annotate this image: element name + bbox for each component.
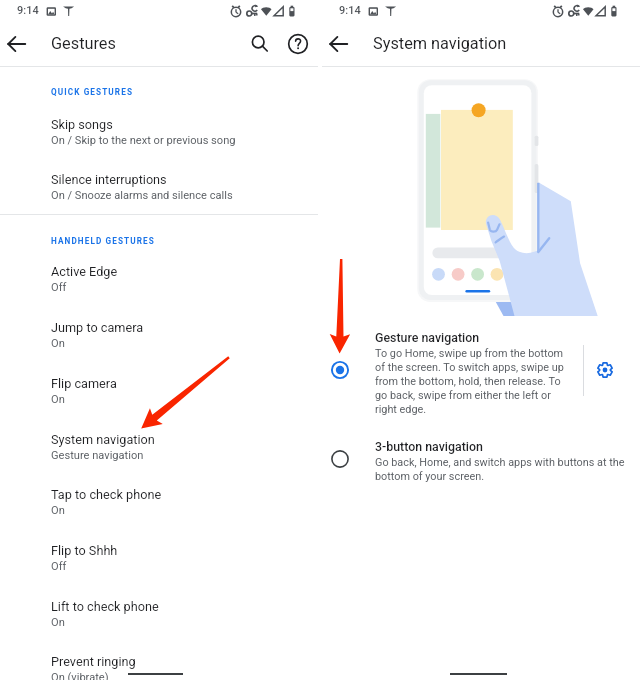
button[interactable]: Gesture navigation settings — [594, 359, 616, 381]
staticText: On — [51, 337, 65, 350]
staticText: 9:14 — [17, 4, 39, 17]
staticText: Skip songs — [51, 117, 113, 132]
staticText: On — [51, 616, 65, 629]
button[interactable]: Active Edge — [0, 264, 318, 292]
staticText: Lift to check phone — [51, 599, 159, 614]
staticText: Gesture navigation — [375, 330, 480, 345]
staticText: On / Skip to the next or previous song — [51, 134, 236, 147]
button[interactable]: 3-button navigation — [322, 439, 640, 499]
staticText: Off — [51, 281, 67, 294]
staticText: 3-button navigation — [375, 439, 483, 454]
staticText: Flip camera — [51, 376, 117, 391]
staticText: On — [51, 393, 65, 406]
staticText: Active Edge — [51, 264, 118, 279]
button[interactable]: Gesture navigation — [322, 330, 640, 422]
button[interactable]: Help — [286, 32, 310, 56]
staticText: Jump to camera — [51, 320, 144, 335]
button[interactable]: Flip to Shhh — [0, 543, 318, 571]
staticText: On (vibrate) — [51, 671, 109, 680]
staticText: On / Snooze alarms and silence calls — [51, 189, 233, 202]
staticText: On — [51, 504, 65, 517]
staticText: Tap to check phone — [51, 487, 162, 502]
button[interactable]: Prevent ringing — [0, 654, 318, 680]
staticText: To go Home, swipe up from the bottom of … — [375, 347, 567, 416]
button[interactable]: Lift to check phone — [0, 599, 318, 627]
button[interactable]: Jump to camera — [0, 320, 318, 348]
button[interactable]: Silence interruptions — [0, 172, 318, 200]
staticText: Prevent ringing — [51, 654, 136, 669]
staticText: Flip to Shhh — [51, 543, 118, 558]
staticText: QUICK GESTURES — [51, 87, 134, 97]
button[interactable]: Skip songs — [0, 117, 318, 145]
staticText: Silence interruptions — [51, 172, 167, 187]
button[interactable]: Search — [248, 32, 272, 56]
staticText: Go back, Home, and switch apps with butt… — [375, 456, 625, 483]
button[interactable]: Tap to check phone — [0, 487, 318, 515]
staticText: System navigation — [373, 34, 507, 53]
staticText: Off — [51, 560, 67, 573]
button[interactable]: Back — [5, 32, 29, 56]
button[interactable]: Back — [327, 32, 351, 56]
staticText: 9:14 — [339, 4, 361, 17]
staticText: Gestures — [51, 34, 116, 53]
button[interactable]: System navigation — [0, 432, 318, 460]
button[interactable]: Flip camera — [0, 376, 318, 404]
staticText: System navigation — [51, 432, 155, 447]
staticText: HANDHELD GESTURES — [51, 236, 155, 246]
staticText: Gesture navigation — [51, 449, 144, 462]
